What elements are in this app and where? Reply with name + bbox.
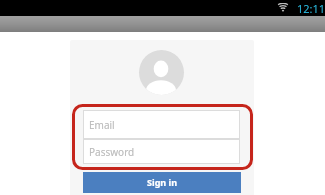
other: Profile picture — [139, 50, 184, 95]
button[interactable]: Password — [83, 139, 240, 164]
other: Wi-Fi connected — [277, 3, 289, 12]
staticText: Sign in — [147, 176, 178, 188]
button[interactable]: Email — [83, 110, 240, 139]
staticText: 12:11 — [297, 1, 325, 16]
staticText: Password — [89, 145, 135, 159]
staticText: Email — [89, 118, 115, 132]
button[interactable]: Sign in — [83, 172, 241, 193]
